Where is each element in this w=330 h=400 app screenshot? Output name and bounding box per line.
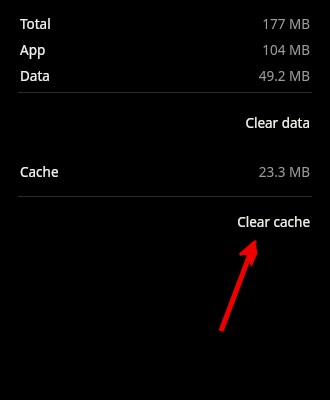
staticText: Clear data (245, 114, 310, 132)
staticText: Data (20, 67, 50, 85)
button[interactable]: Cache (0, 153, 330, 191)
staticText: 49.2 MB (258, 67, 310, 85)
staticText: Cache (20, 163, 59, 181)
staticText: 177 MB (262, 15, 310, 33)
staticText: 23.3 MB (258, 163, 310, 181)
staticText: Clear cache (237, 213, 310, 231)
staticText: 104 MB (262, 41, 310, 59)
button[interactable]: Clear data (0, 93, 330, 153)
button[interactable]: App (0, 37, 330, 63)
button[interactable]: Data (0, 63, 330, 89)
button[interactable]: Clear cache (0, 197, 330, 247)
button[interactable]: Total (0, 11, 330, 37)
staticText: Total (20, 15, 51, 33)
staticText: App (20, 41, 46, 59)
